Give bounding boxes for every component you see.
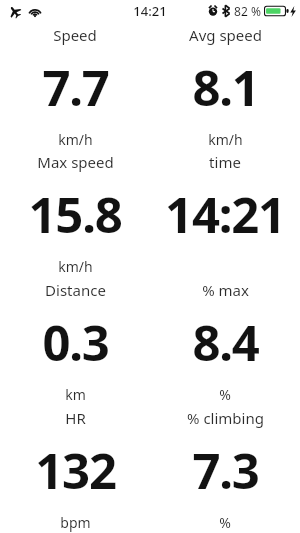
staticText: Distance — [45, 280, 106, 300]
staticText: HR — [65, 408, 86, 428]
staticText: km/h — [58, 130, 93, 149]
staticText: Max speed — [37, 152, 114, 172]
staticText: 8.1 — [192, 54, 259, 121]
other: Alarm set — [208, 6, 218, 16]
staticText: km — [65, 385, 86, 404]
staticText: bpm — [60, 513, 91, 532]
staticText: 14:21 — [165, 181, 285, 248]
button[interactable]: HR — [0, 405, 150, 533]
other: Airplane mode — [8, 5, 21, 18]
button[interactable]: time — [150, 149, 300, 277]
staticText: km/h — [58, 257, 93, 276]
other: Bluetooth — [222, 5, 230, 17]
button[interactable]: Speed — [0, 22, 150, 149]
staticText: time — [209, 152, 241, 172]
staticText: % — [219, 385, 231, 404]
staticText: 0.3 — [42, 309, 109, 376]
button[interactable]: Avg speed — [150, 22, 300, 149]
other: Battery 82 percent charging — [264, 5, 289, 17]
staticText: 14:21 — [133, 2, 167, 20]
staticText: 7.7 — [42, 54, 109, 121]
staticText: % — [219, 513, 231, 532]
other: Wi-Fi — [28, 6, 42, 17]
staticText: Avg speed — [189, 25, 262, 45]
staticText: 15.8 — [28, 181, 122, 248]
staticText: Speed — [53, 25, 97, 45]
button[interactable]: Distance — [0, 277, 150, 405]
staticText: 82 % — [234, 3, 261, 19]
button[interactable]: Max speed — [0, 149, 150, 277]
staticText: km/h — [208, 130, 243, 149]
button[interactable]: % climbing — [150, 405, 300, 533]
staticText: 7.3 — [192, 437, 259, 504]
staticText: 8.4 — [192, 309, 259, 376]
staticText: % climbing — [187, 408, 264, 428]
staticText: 132 — [35, 437, 116, 504]
staticText: % max — [202, 280, 249, 300]
button[interactable]: % max — [150, 277, 300, 405]
